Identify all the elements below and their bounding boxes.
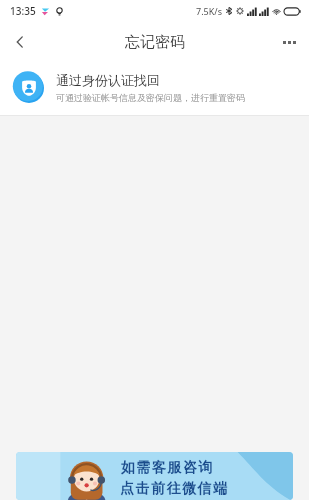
button[interactable]: 通过身份认证找回 [0,62,309,115]
button[interactable]: Back [0,22,40,62]
staticText: 如需客服咨询 [120,459,213,477]
staticText: 可通过验证帐号信息及密保问题，进行重置密码 [56,92,245,103]
staticText: 7.5K/s [196,5,222,17]
staticText: 点击前往微信端 [120,480,229,498]
button[interactable]: 联系客服 前往微信端 [16,452,293,500]
staticText: 通过身份认证找回 [56,72,160,88]
button[interactable]: More options [269,22,309,62]
staticText: 13:35 [10,4,36,18]
staticText: 忘记密码 [125,33,185,52]
